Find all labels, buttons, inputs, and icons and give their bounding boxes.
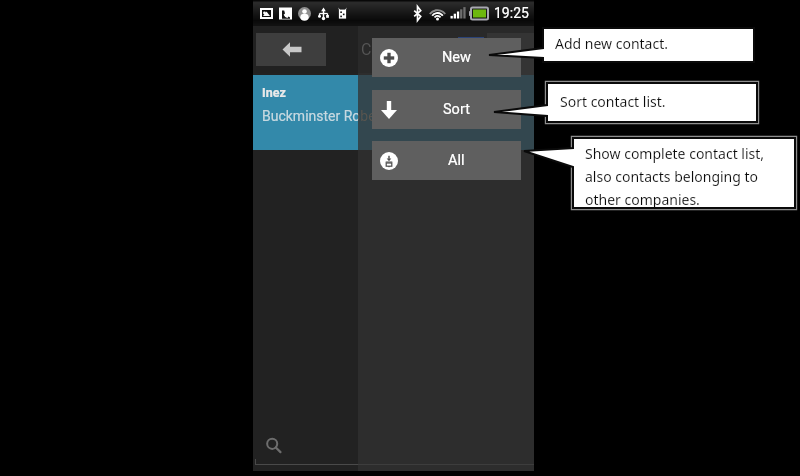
staticText: Sort contact list. xyxy=(560,92,666,111)
staticText: 19:25 xyxy=(494,5,529,21)
button[interactable]: New xyxy=(372,38,521,77)
staticText: All xyxy=(448,152,465,169)
button[interactable]: All xyxy=(372,141,521,180)
button[interactable]: Sort xyxy=(372,90,521,129)
staticText: Contacts xyxy=(361,40,426,59)
staticText: Sort xyxy=(443,101,470,118)
staticText: Show complete contact list, xyxy=(585,144,765,163)
staticText: Add new contact. xyxy=(555,34,668,53)
button[interactable]: Back xyxy=(256,33,326,66)
button[interactable]: Inez xyxy=(253,75,534,150)
staticText: Inez xyxy=(262,85,286,100)
staticText: New xyxy=(442,49,471,66)
staticText: Buckminster Roberts xyxy=(358,108,393,124)
button[interactable]: Search xyxy=(253,428,358,465)
staticText: other companies. xyxy=(585,190,700,209)
staticText: also contacts belonging to xyxy=(585,167,759,186)
staticText: Buckminster Roberts xyxy=(262,108,358,124)
